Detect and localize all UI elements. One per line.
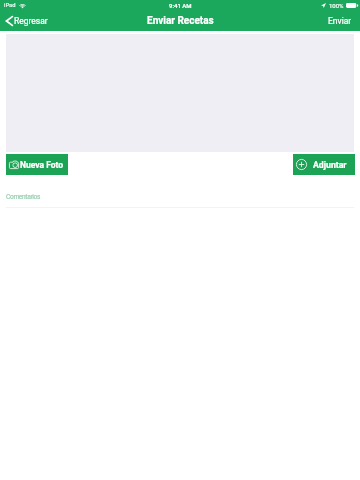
staticText: iPad — [4, 2, 16, 9]
button[interactable]: Adjuntar — [293, 154, 355, 175]
staticText: 100% — [329, 2, 344, 9]
staticText: Enviar Recetas — [147, 15, 214, 27]
staticText: Nueva Foto — [20, 160, 64, 170]
staticText: 9:41 AM — [169, 2, 192, 9]
button[interactable]: Nueva Foto — [6, 154, 68, 175]
staticText: Regresar — [14, 16, 48, 26]
button[interactable]: Enviar — [319, 13, 360, 29]
staticText: Comentarios — [6, 193, 41, 201]
staticText: Adjuntar — [313, 160, 347, 170]
button[interactable]: Regresar — [0, 14, 52, 28]
